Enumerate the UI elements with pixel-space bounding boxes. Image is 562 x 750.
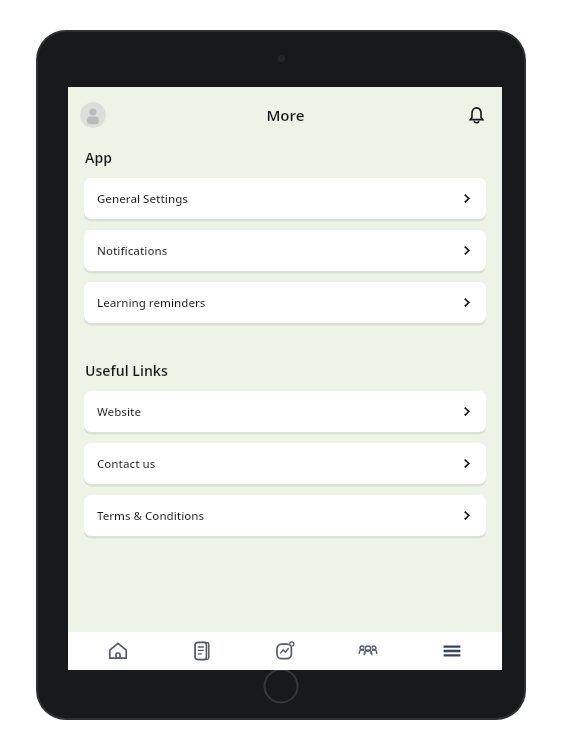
button[interactable]: Documents <box>169 632 235 670</box>
button[interactable]: Contact us <box>84 443 486 484</box>
button[interactable]: Community <box>335 632 401 670</box>
staticText: General Settings <box>97 191 188 207</box>
staticText: Terms & Conditions <box>97 508 205 524</box>
button[interactable]: Terms & Conditions <box>84 495 486 536</box>
staticText: Learning reminders <box>97 295 206 311</box>
button[interactable]: Progress <box>252 632 318 670</box>
button[interactable]: Menu <box>419 632 485 670</box>
staticText: App <box>85 148 112 167</box>
button[interactable]: General Settings <box>84 178 486 219</box>
button[interactable]: Profile <box>80 102 106 128</box>
staticText: More <box>266 105 305 125</box>
button[interactable]: Notifications <box>84 230 486 271</box>
staticText: Contact us <box>97 456 156 472</box>
staticText: Notifications <box>97 243 168 259</box>
staticText: Website <box>97 404 142 420</box>
button[interactable]: Learning reminders <box>84 282 486 323</box>
button[interactable]: Website <box>84 391 486 432</box>
button[interactable]: Home <box>85 632 151 670</box>
button[interactable]: Notifications <box>462 101 490 129</box>
staticText: Useful Links <box>85 361 168 380</box>
